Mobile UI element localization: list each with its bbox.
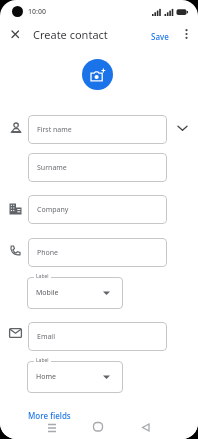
staticText: Label <box>36 273 49 280</box>
button[interactable]: Mobile <box>27 277 123 309</box>
button[interactable]: Home <box>27 361 123 393</box>
staticText: Mobile <box>36 288 59 298</box>
staticText: Surname <box>37 163 67 173</box>
button[interactable]: More fields <box>28 410 71 421</box>
button[interactable] <box>180 27 193 41</box>
button[interactable]: Email <box>28 322 167 351</box>
button[interactable]: Phone <box>28 238 167 267</box>
staticText: Company <box>37 205 69 215</box>
staticText: Save <box>151 31 169 42</box>
button[interactable] <box>82 59 113 90</box>
button[interactable] <box>90 419 106 435</box>
button[interactable]: Surname <box>28 153 167 182</box>
staticText: Label <box>36 357 49 364</box>
button[interactable]: Company <box>28 195 167 224</box>
staticText: Home <box>36 372 56 382</box>
staticText: Create contact <box>33 27 108 42</box>
button[interactable] <box>8 27 22 41</box>
button[interactable] <box>138 420 154 436</box>
button[interactable] <box>174 120 191 136</box>
staticText: Phone <box>37 248 59 258</box>
staticText: More fields <box>28 410 71 421</box>
staticText: 10:00 <box>28 7 46 17</box>
staticText: First name <box>37 125 72 135</box>
staticText: Email <box>37 332 55 342</box>
button[interactable]: Save <box>151 31 169 42</box>
button[interactable]: First name <box>28 115 167 144</box>
button[interactable] <box>44 420 60 436</box>
